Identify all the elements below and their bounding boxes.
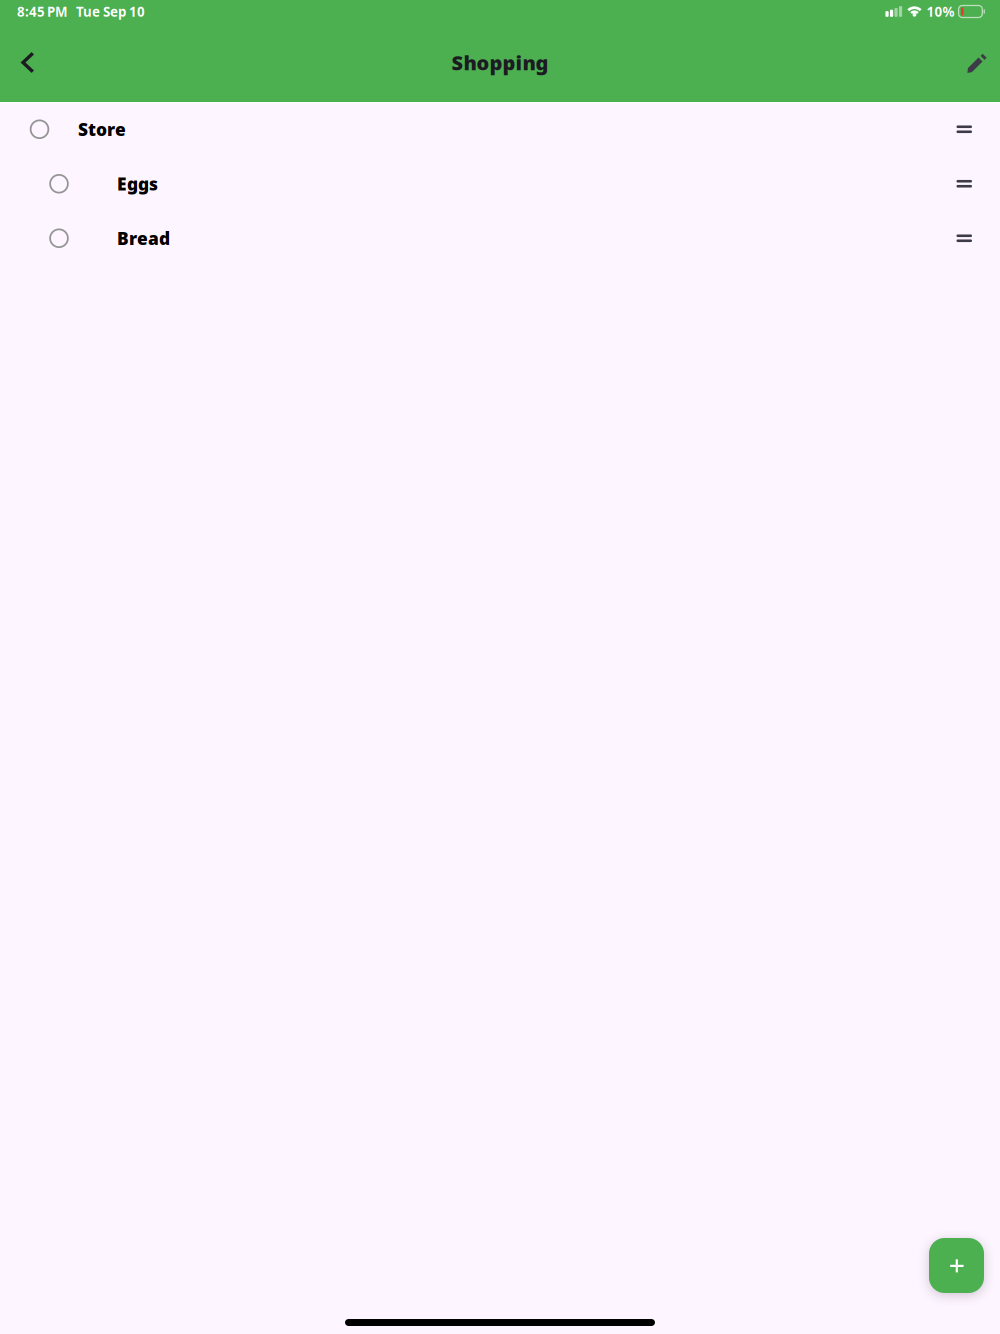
staticText: 8:45 PM [17,3,68,20]
button[interactable]: Back [2,36,54,88]
button[interactable]: Eggs [0,156,1000,211]
button[interactable]: Bread [0,211,1000,265]
button[interactable]: Edit [948,36,1000,88]
staticText: Tue Sep 10 [76,3,145,20]
button[interactable]: Store [0,102,1000,156]
staticText: Shopping [451,49,548,76]
staticText: Store [78,118,126,141]
staticText: Bread [117,227,170,250]
staticText: Eggs [117,172,158,195]
staticText: 10% [927,3,955,20]
button[interactable]: Add item [929,1238,984,1293]
